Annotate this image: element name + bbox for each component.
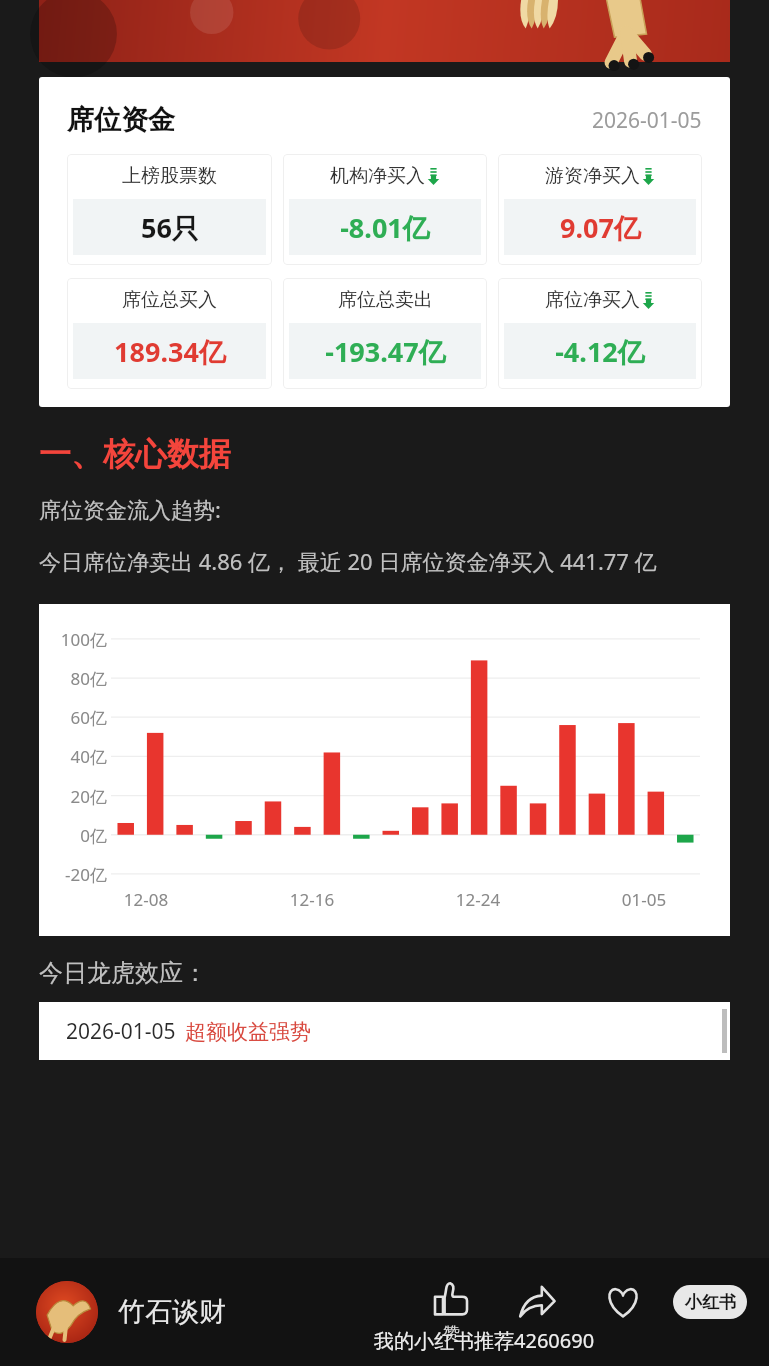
- staticText: 60亿: [51, 706, 107, 729]
- staticText: 我的小红书推荐4260690: [374, 1327, 595, 1354]
- button[interactable]: 作者头像: [36, 1281, 98, 1343]
- staticText: 席位总卖出: [338, 288, 433, 312]
- staticText: 9.07亿: [560, 209, 641, 246]
- staticText: 40亿: [51, 745, 107, 768]
- button[interactable]: 小红书: [673, 1285, 747, 1319]
- staticText: 20亿: [51, 785, 107, 808]
- button[interactable]: 机构净买入: [283, 154, 487, 265]
- staticText: 机构净买入: [330, 164, 425, 188]
- button[interactable]: 席位净买入: [498, 278, 702, 389]
- button[interactable]: 席位总买入: [67, 278, 272, 389]
- button[interactable]: 2026-01-05: [39, 1002, 730, 1060]
- button[interactable]: 游资净买入: [498, 154, 702, 265]
- staticText: 80亿: [51, 667, 107, 690]
- staticText: -8.01亿: [340, 209, 430, 246]
- staticText: 12-24: [450, 888, 506, 911]
- staticText: 56只: [141, 209, 199, 246]
- button[interactable]: 竹石谈财: [118, 1295, 226, 1329]
- staticText: 核心数据: [103, 434, 231, 474]
- staticText: 赞: [443, 1323, 460, 1344]
- button[interactable]: 上榜股票数: [67, 154, 272, 265]
- staticText: 今日席位净卖出 4.86 亿， 最近 20 日席位资金净买入 441.77 亿: [39, 546, 657, 576]
- staticText: 0亿: [51, 824, 107, 847]
- staticText: -20亿: [51, 863, 107, 886]
- button[interactable]: 收藏: [595, 1292, 651, 1332]
- button[interactable]: 赞: [423, 1280, 479, 1344]
- staticText: 席位资金: [67, 103, 175, 137]
- staticText: 12-08: [118, 888, 174, 911]
- staticText: 小红书: [685, 1292, 736, 1313]
- staticText: 上榜股票数: [122, 164, 217, 188]
- staticText: 100亿: [51, 628, 107, 651]
- staticText: -193.47亿: [325, 333, 446, 370]
- staticText: 席位净买入: [545, 288, 640, 312]
- button[interactable]: 分享: [509, 1292, 565, 1332]
- staticText: 01-05: [616, 888, 672, 911]
- staticText: 2026-01-05: [592, 106, 702, 135]
- staticText: 席位资金流入趋势:: [39, 494, 221, 524]
- staticText: 超额收益强势: [185, 1019, 311, 1045]
- staticText: 今日龙虎效应：: [39, 958, 207, 988]
- staticText: 游资净买入: [545, 164, 640, 188]
- staticText: 189.34亿: [114, 333, 226, 370]
- staticText: 一、: [39, 434, 103, 474]
- button[interactable]: 席位总卖出: [283, 278, 487, 389]
- staticText: -4.12亿: [555, 333, 645, 370]
- staticText: 席位总买入: [122, 288, 217, 312]
- staticText: 2026-01-05: [66, 1017, 176, 1046]
- staticText: 12-16: [284, 888, 340, 911]
